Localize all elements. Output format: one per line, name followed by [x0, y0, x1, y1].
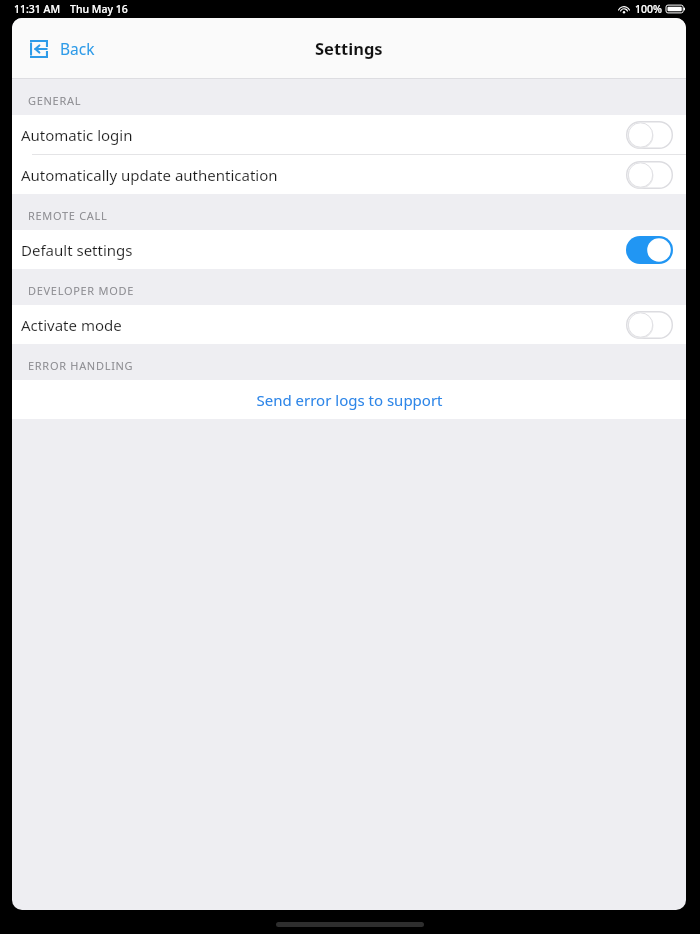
button[interactable]: Automatic login	[12, 115, 686, 154]
staticText: Thu May 16	[70, 2, 128, 16]
staticText: Back	[60, 38, 95, 59]
staticText: Activate mode	[21, 315, 626, 335]
button[interactable]: Send error logs to support	[12, 380, 686, 419]
other: Off	[626, 311, 673, 339]
button[interactable]: Back	[26, 32, 99, 65]
staticText: Settings	[315, 37, 383, 59]
other: Off	[626, 161, 673, 189]
staticText: Send error logs to support	[256, 390, 443, 410]
staticText: Automatically update authentication	[21, 165, 626, 185]
staticText: REMOTE CALL	[28, 208, 108, 223]
other: Off	[626, 121, 673, 149]
button[interactable]: Automatically update authentication	[12, 155, 686, 194]
staticText: GENERAL	[28, 93, 82, 108]
staticText: 100%	[635, 2, 662, 16]
staticText: 11:31 AM	[14, 2, 61, 16]
staticText: Automatic login	[21, 125, 626, 145]
button[interactable]: Default settings	[12, 230, 686, 269]
button[interactable]: Activate mode	[12, 305, 686, 344]
staticText: ERROR HANDLING	[28, 358, 134, 373]
other: On	[626, 236, 673, 264]
staticText: DEVELOPER MODE	[28, 283, 134, 298]
staticText: Default settings	[21, 240, 626, 260]
other: Back	[30, 40, 48, 58]
